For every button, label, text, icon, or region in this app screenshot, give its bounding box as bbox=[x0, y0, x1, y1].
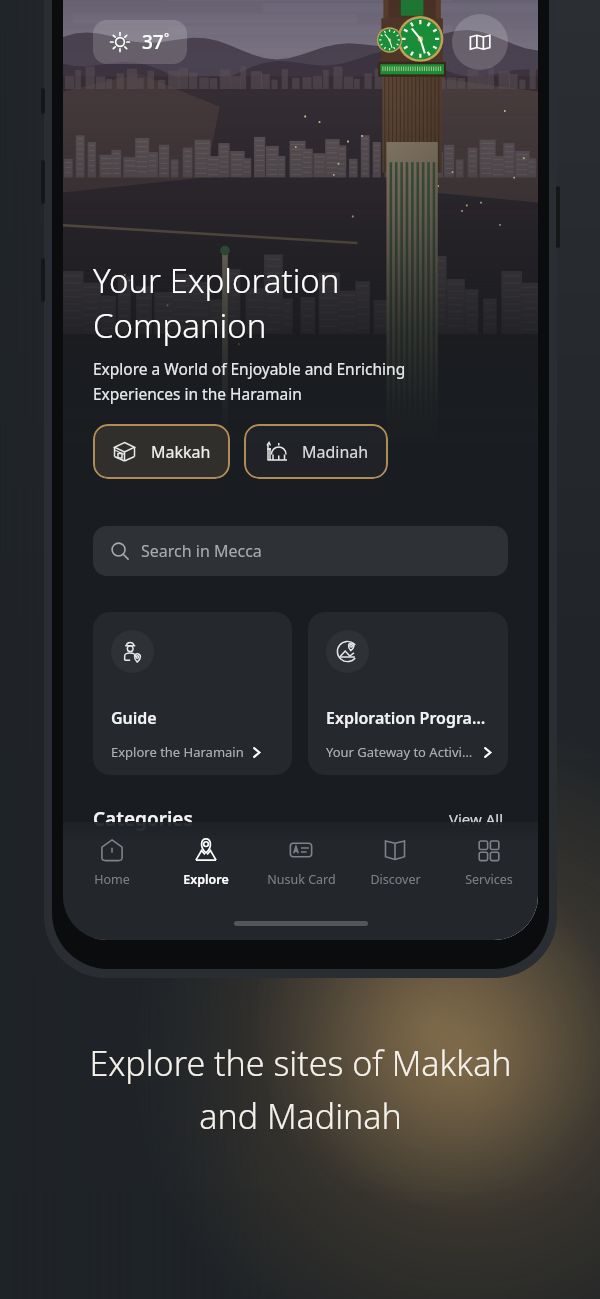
staticText: Explore bbox=[183, 871, 229, 888]
staticText: Explore the sites of Makkah and Madinah bbox=[89, 1040, 512, 1139]
button[interactable] bbox=[417, 848, 538, 940]
button[interactable]: Exploration Programs bbox=[308, 612, 508, 775]
staticText: Your Gateway to Activit... bbox=[326, 743, 475, 761]
staticText: Makkah bbox=[151, 441, 211, 463]
staticText: Services bbox=[465, 871, 513, 888]
staticText: Nusuk Card bbox=[267, 871, 336, 888]
button[interactable]: Services bbox=[444, 832, 534, 892]
staticText: Explore a World of Enjoyable and Enrichi… bbox=[93, 358, 406, 404]
button[interactable]: Madinah bbox=[244, 424, 388, 479]
button[interactable]: Makkah bbox=[93, 424, 230, 479]
button[interactable]: Discover bbox=[350, 832, 440, 892]
staticText: Home bbox=[94, 871, 130, 888]
button[interactable]: 37 bbox=[93, 20, 187, 64]
staticText: Guide bbox=[111, 707, 157, 729]
button[interactable] bbox=[93, 848, 241, 940]
button[interactable]: Search in Mecca bbox=[93, 526, 508, 576]
staticText: Exploration Programs bbox=[326, 707, 494, 729]
button[interactable]: Explore bbox=[161, 832, 251, 892]
staticText: View All bbox=[449, 809, 504, 829]
staticText: Your Exploration Companion bbox=[93, 258, 340, 348]
button[interactable]: View All bbox=[445, 805, 508, 833]
button[interactable]: Home bbox=[67, 832, 157, 892]
button[interactable] bbox=[255, 848, 403, 940]
staticText: Search in Mecca bbox=[141, 540, 262, 562]
button[interactable]: Guide bbox=[93, 612, 292, 775]
staticText: Discover bbox=[370, 871, 421, 888]
staticText: Madinah bbox=[302, 441, 369, 463]
button[interactable]: Map bbox=[452, 14, 508, 70]
staticText: 37 bbox=[142, 29, 164, 55]
staticText: Explore the Haramain bbox=[111, 743, 244, 761]
staticText: Categories bbox=[93, 806, 193, 832]
staticText: ° bbox=[164, 29, 170, 45]
button[interactable]: Nusuk Card bbox=[256, 832, 346, 892]
